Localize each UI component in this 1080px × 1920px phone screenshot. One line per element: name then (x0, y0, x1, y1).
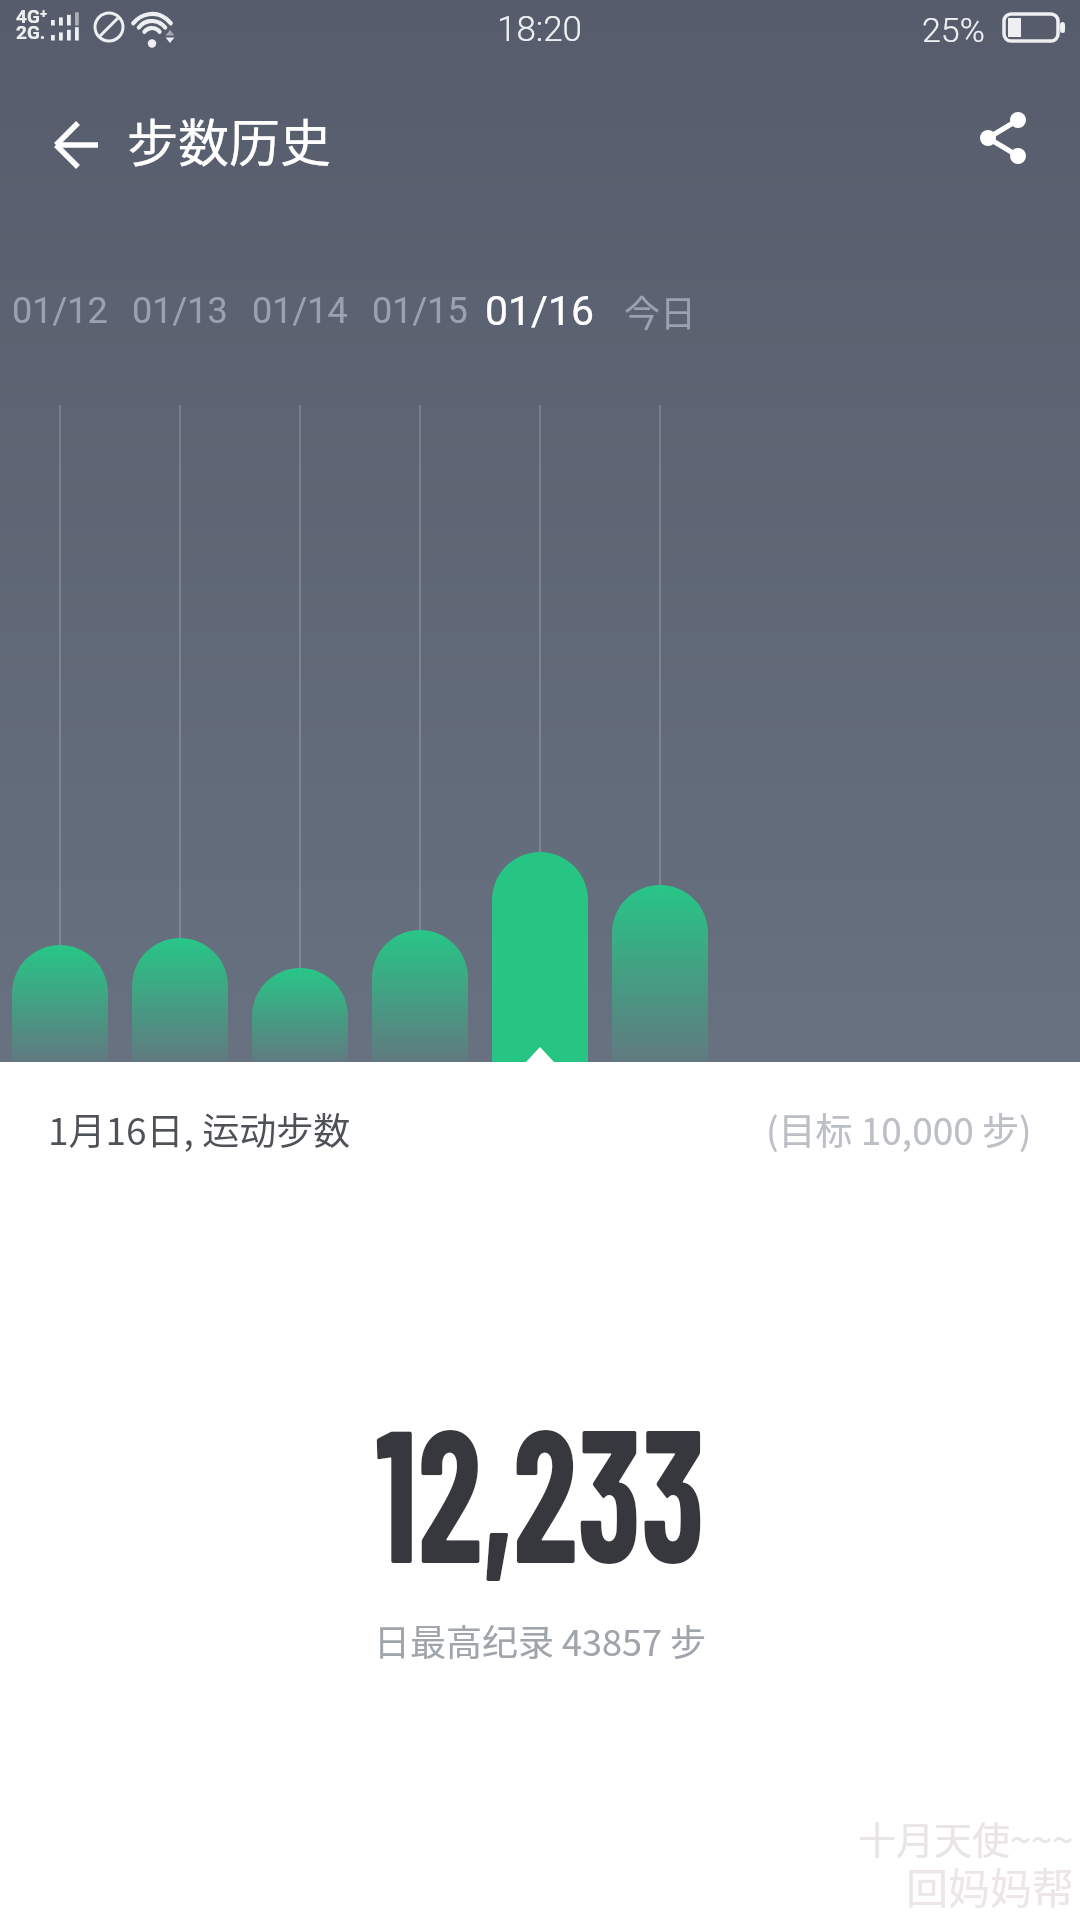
staticText: 今日 (624, 285, 697, 337)
button[interactable]: 01/12 (0, 281, 120, 341)
staticText: 01/15 (372, 290, 468, 332)
button[interactable] (46, 106, 108, 168)
staticText: 01/14 (252, 290, 348, 332)
staticText: 18:20 (497, 9, 583, 50)
button[interactable]: 01/13 (120, 281, 240, 341)
staticText: 十月天使~~~ (858, 1810, 1074, 1865)
button[interactable]: 01/15 (360, 281, 480, 341)
button[interactable]: 01/14 (240, 281, 360, 341)
button[interactable]: 01/16 (480, 281, 600, 341)
button[interactable]: 今日 (600, 281, 720, 341)
button[interactable] (969, 88, 1049, 168)
staticText: 01/13 (132, 290, 228, 332)
staticText: 1月16日, 运动步数 (48, 1102, 351, 1156)
staticText: 12,233 (375, 1375, 705, 1601)
staticText: 4G⁺ (16, 5, 48, 27)
staticText: 步数历史 (127, 103, 332, 177)
staticText: 2G. (16, 21, 46, 43)
staticText: 日最高纪录 43857 步 (374, 1614, 707, 1666)
staticText: 01/16 (485, 287, 595, 335)
staticText: (目标 10,000 步) (766, 1102, 1032, 1156)
staticText: 25% (922, 10, 985, 50)
staticText: 回妈妈帮 (906, 1855, 1075, 1916)
staticText: 01/12 (12, 290, 108, 332)
